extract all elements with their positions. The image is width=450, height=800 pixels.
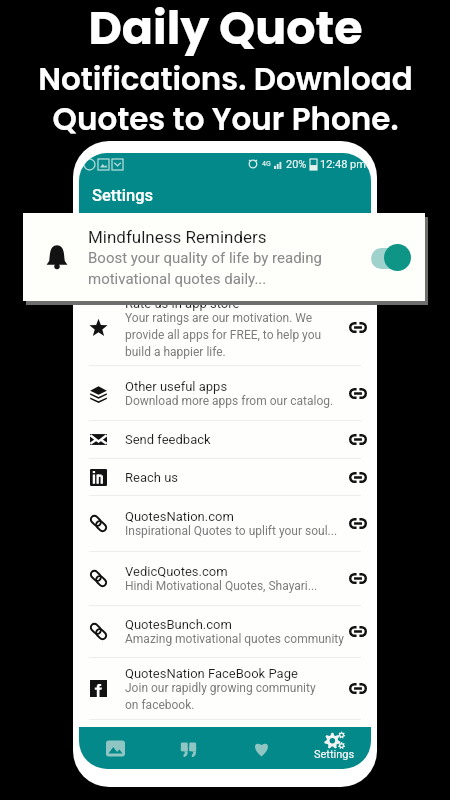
staticText: Daily Quote [88, 0, 363, 60]
staticText: Share with your friends and family. [125, 255, 309, 269]
staticText: 20% [286, 158, 307, 171]
button[interactable]: Favorites [225, 727, 298, 769]
staticText: Send feedback [125, 432, 211, 447]
staticText: Download more apps from our catalog. [125, 394, 334, 408]
staticText: Settings [92, 186, 154, 205]
button[interactable]: QuotesNation.com [79, 496, 371, 551]
staticText: VedicQuotes.com [125, 564, 228, 579]
staticText: QuotesNation.com [125, 509, 234, 524]
staticText: Other useful apps [125, 379, 228, 394]
button[interactable]: QuotesBunch.com [79, 606, 371, 657]
staticText: Inspirational Quotes to uplift your soul… [125, 524, 338, 538]
staticText: Rate us in app store [125, 296, 240, 311]
staticText: Boost your quality of life by reading mo… [88, 249, 322, 287]
button[interactable]: Share this app [79, 220, 371, 288]
button[interactable]: Settings [298, 727, 371, 769]
staticText: 12:48 pm [320, 158, 366, 171]
staticText: 4G [262, 160, 271, 168]
staticText: QuotesNation FaceBook Page [125, 666, 298, 681]
button[interactable]: Send feedback [79, 421, 371, 458]
staticText: Mindfulness Reminders [88, 227, 267, 247]
button[interactable]: Other useful apps [79, 366, 371, 420]
staticText: QuotesBunch.com [125, 617, 232, 632]
staticText: Amazing motivational quotes community [125, 632, 344, 646]
staticText: Hindi Motivational Quotes, Shayari... [125, 579, 318, 593]
staticText: Notifications. Download Quotes to Your P… [38, 57, 413, 141]
staticText: Your ratings are our motivation. We prov… [125, 311, 322, 359]
button[interactable]: Gallery [79, 727, 152, 769]
button[interactable]: Mindfulness Reminders [23, 213, 425, 301]
staticText: Join our rapidly growing community on fa… [125, 681, 316, 712]
button[interactable]: Rate us in app store [79, 289, 371, 365]
button[interactable]: QuotesNation FaceBook Page [79, 658, 371, 719]
button[interactable]: VedicQuotes.com [79, 552, 371, 605]
staticText: Share this app [125, 240, 208, 255]
staticText: Settings [314, 748, 355, 761]
button[interactable]: Quotes [152, 727, 225, 769]
button[interactable]: Reach us [79, 459, 371, 495]
staticText: Reach us [125, 470, 179, 485]
